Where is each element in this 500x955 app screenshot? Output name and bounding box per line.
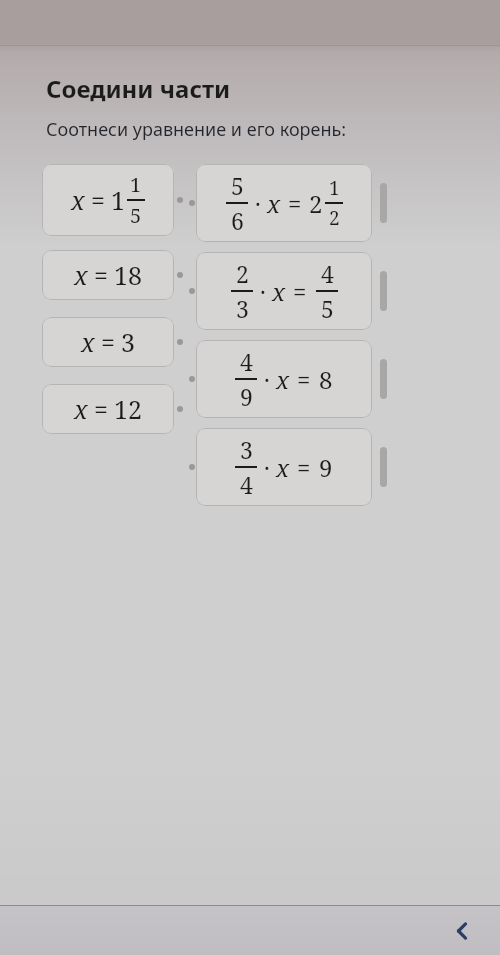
staticText: 3 (236, 293, 249, 324)
staticText: x (81, 325, 95, 359)
staticText: = (101, 325, 115, 359)
staticText: = (94, 392, 108, 426)
staticText: 5 (321, 293, 334, 324)
button[interactable]: x (42, 164, 174, 236)
staticText: x (276, 451, 290, 484)
staticText: · (260, 276, 266, 307)
button[interactable]: 2 (196, 252, 372, 330)
staticText: x (74, 392, 88, 426)
button[interactable]: Drag handle (380, 183, 387, 223)
staticText: = (288, 187, 302, 220)
button[interactable]: x (42, 250, 174, 300)
staticText: 18 (114, 258, 142, 292)
staticText: Соотнеси уравнение и его корень: (46, 117, 346, 142)
staticText: 5 (130, 202, 142, 229)
staticText: 5 (231, 170, 244, 201)
staticText: 1 (111, 183, 125, 217)
staticText: 3 (240, 434, 253, 465)
staticText: 1 (329, 175, 340, 201)
staticText: x (272, 275, 286, 308)
staticText: 9 (240, 381, 253, 412)
staticText: = (94, 258, 108, 292)
staticText: = (91, 183, 105, 217)
staticText: = (297, 451, 311, 484)
staticText: 4 (240, 346, 253, 377)
button[interactable]: 5 (196, 164, 372, 242)
staticText: x (74, 258, 88, 292)
staticText: · (255, 188, 261, 219)
button[interactable]: Drag handle (380, 359, 387, 399)
staticText: 8 (319, 363, 333, 396)
staticText: 2 (236, 258, 249, 289)
staticText: x (267, 187, 281, 220)
button[interactable]: Drag handle (380, 447, 387, 487)
button[interactable]: 3 (196, 428, 372, 506)
button[interactable]: 4 (196, 340, 372, 418)
staticText: 12 (114, 392, 142, 426)
staticText: = (293, 275, 307, 308)
staticText: · (264, 452, 270, 483)
button[interactable]: x (42, 384, 174, 434)
staticText: 3 (121, 325, 135, 359)
button[interactable]: Back (440, 909, 484, 953)
staticText: 2 (309, 187, 323, 220)
staticText: · (264, 364, 270, 395)
button[interactable]: Drag handle (380, 271, 387, 311)
staticText: x (71, 183, 85, 217)
staticText: 9 (319, 451, 333, 484)
staticText: 4 (240, 469, 253, 500)
staticText: Соедини части (46, 72, 231, 105)
staticText: x (276, 363, 290, 396)
staticText: 2 (329, 205, 340, 231)
staticText: 1 (130, 171, 142, 198)
staticText: 4 (321, 258, 334, 289)
staticText: 6 (231, 205, 244, 236)
button[interactable]: x (42, 317, 174, 367)
staticText: = (297, 363, 311, 396)
